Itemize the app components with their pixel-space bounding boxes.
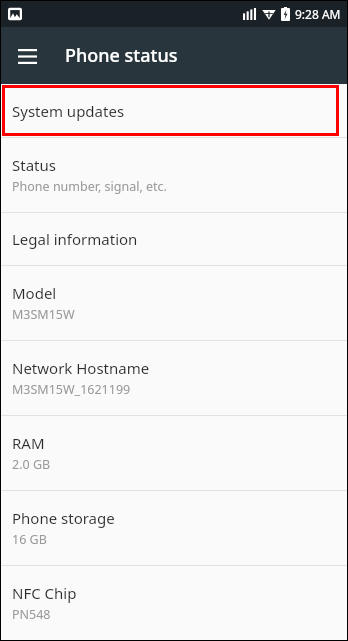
button[interactable]: Model [1,266,347,340]
staticText: 9:28 AM [295,6,341,22]
staticText: System updates [12,101,125,121]
staticText: NFC Chip [12,583,77,603]
button[interactable]: System updates [1,84,347,137]
staticText: Phone storage [12,508,115,528]
button[interactable]: Network Hostname [1,341,347,415]
staticText: Phone status [65,43,178,68]
staticText: RAM [12,433,45,453]
button[interactable]: RAM [1,416,347,490]
staticText: 16 GB [12,531,47,548]
staticText: Status [12,155,56,175]
staticText: Network Hostname [12,358,150,378]
button[interactable]: NFC Chip [1,566,347,640]
staticText: PN548 [12,606,51,623]
staticText: Legal information [12,229,138,249]
button[interactable]: Status [1,138,347,212]
staticText: 2.0 GB [12,456,51,473]
staticText: Model [12,283,57,303]
button[interactable]: Legal information [1,213,347,265]
staticText: Phone number, signal, etc. [12,178,167,195]
staticText: M3SM15W_1621199 [12,381,131,398]
button[interactable]: Open navigation menu [9,38,45,74]
staticText: M3SM15W [12,306,75,323]
button[interactable]: Phone storage [1,491,347,565]
